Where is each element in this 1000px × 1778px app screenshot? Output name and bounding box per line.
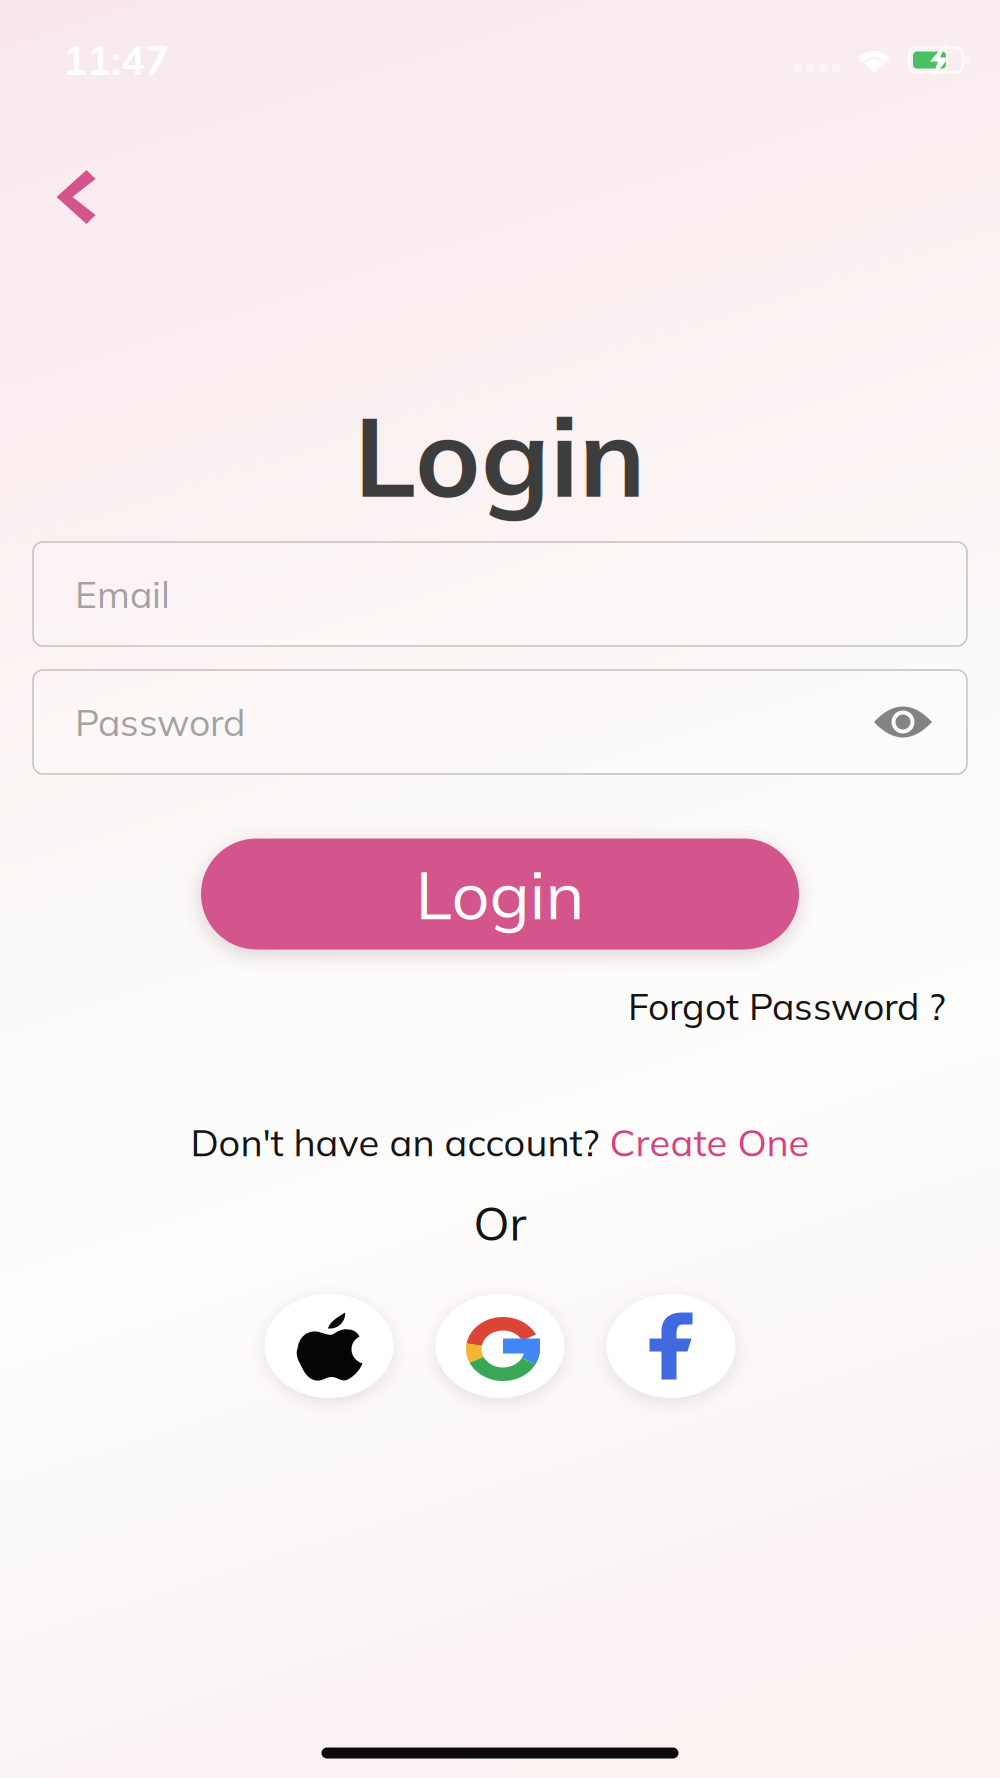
button[interactable]: Sign in with Facebook bbox=[606, 1294, 735, 1398]
button[interactable]: Back bbox=[26, 140, 125, 254]
staticText: 11:47 bbox=[63, 35, 169, 85]
staticText: Don't have an account? bbox=[190, 1118, 609, 1166]
button[interactable]: Login bbox=[201, 838, 799, 949]
button[interactable]: Sign in with Google bbox=[435, 1294, 564, 1398]
button[interactable]: Create One bbox=[609, 1118, 809, 1166]
button[interactable]: Forgot Password ? bbox=[624, 975, 950, 1037]
staticText: Password bbox=[75, 699, 245, 745]
staticText: Login bbox=[415, 852, 584, 936]
button[interactable]: Password bbox=[33, 670, 967, 774]
staticText: Forgot Password ? bbox=[628, 983, 946, 1029]
staticText: Create One bbox=[609, 1118, 809, 1166]
staticText: Login bbox=[354, 386, 646, 524]
button[interactable]: Email bbox=[33, 542, 967, 646]
staticText: Or bbox=[473, 1194, 526, 1252]
button[interactable]: Show password bbox=[874, 704, 932, 740]
button[interactable]: Sign in with Apple bbox=[264, 1294, 393, 1398]
staticText: Email bbox=[75, 571, 170, 617]
